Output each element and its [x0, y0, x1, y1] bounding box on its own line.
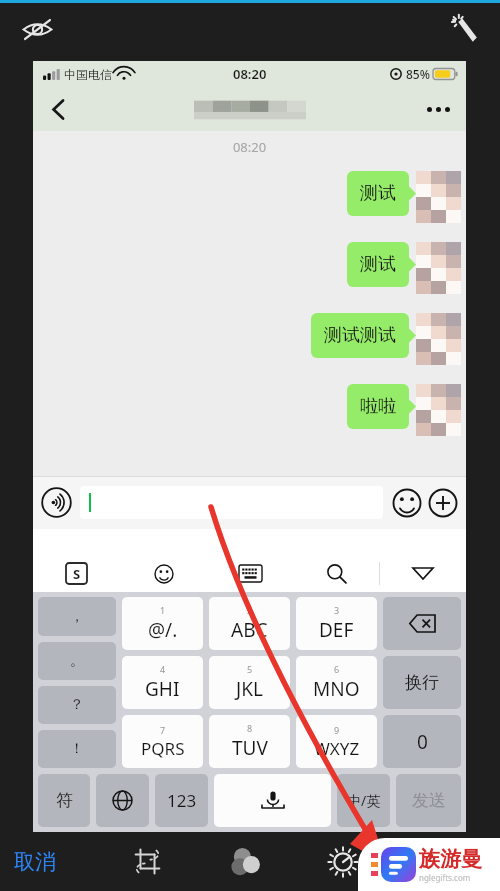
staticText: S — [73, 565, 81, 583]
button[interactable]: Emoji keyboard — [120, 555, 207, 592]
button[interactable]: 测试 — [347, 171, 409, 216]
staticText: 发送 — [412, 790, 446, 811]
staticText: 3 — [334, 604, 340, 616]
staticText: 取消 — [14, 849, 56, 875]
button[interactable]: Emoji — [392, 488, 422, 518]
button[interactable]: Magic enhance — [440, 6, 486, 52]
button[interactable]: 2 — [209, 597, 290, 650]
button[interactable] — [80, 486, 383, 519]
button[interactable]: 发送 — [396, 774, 461, 827]
staticText: 1 — [160, 604, 166, 616]
button[interactable]: ？ — [38, 686, 116, 724]
staticText: ， — [70, 608, 84, 626]
button[interactable]: 6 — [296, 656, 377, 709]
staticText: MNO — [313, 676, 360, 702]
button[interactable]: Search — [293, 555, 379, 592]
staticText: JKL — [236, 676, 263, 702]
staticText: 测试测试 — [324, 324, 396, 347]
button[interactable]: Crop and rotate — [98, 832, 196, 891]
staticText: @/. — [148, 617, 178, 643]
staticText: 换行 — [405, 672, 439, 693]
button[interactable]: Space or voice input — [214, 774, 331, 827]
button[interactable]: 7 — [122, 715, 203, 768]
button[interactable]: Hide keyboard — [380, 555, 466, 592]
button[interactable]: Adjust brightness — [294, 832, 392, 891]
staticText: 123 — [167, 789, 197, 812]
button[interactable]: 换行 — [383, 656, 461, 709]
staticText: 啦啦 — [360, 395, 396, 418]
button[interactable]: Add attachment — [428, 488, 458, 518]
button[interactable]: ！ — [38, 730, 116, 768]
staticText: 。 — [70, 652, 84, 670]
button[interactable]: 中/英 — [337, 774, 390, 827]
staticText: 中/英 — [347, 791, 381, 810]
staticText: WXYZ — [314, 737, 360, 760]
button[interactable]: ， — [38, 597, 116, 636]
button[interactable]: Input method settings — [33, 555, 120, 592]
staticText: GHI — [145, 676, 180, 702]
staticText: 2 — [247, 604, 253, 616]
button[interactable]: 啦啦 — [347, 384, 409, 429]
button[interactable]: Voice input — [41, 487, 72, 518]
button[interactable]: 8 — [209, 715, 290, 768]
button[interactable]: 9 — [296, 715, 377, 768]
staticText: ABC — [231, 617, 268, 643]
staticText: 符 — [56, 790, 73, 811]
staticText: 4 — [160, 663, 166, 675]
staticText: DEF — [319, 617, 354, 643]
staticText: 0 — [417, 729, 428, 755]
staticText: PQRS — [141, 737, 185, 760]
staticText: 测试 — [360, 182, 396, 205]
staticText: ！ — [70, 740, 84, 758]
button[interactable]: Back — [37, 88, 79, 130]
staticText: 08:20 — [33, 138, 466, 156]
button[interactable]: 123 — [155, 774, 208, 827]
staticText: 9 — [334, 724, 340, 736]
button[interactable]: 0 — [383, 715, 461, 768]
staticText: 08:20 — [233, 65, 267, 83]
button[interactable]: 测试测试 — [311, 313, 409, 358]
button[interactable]: Backspace — [383, 597, 461, 650]
button[interactable]: 测试 — [347, 242, 409, 287]
staticText: 5 — [247, 663, 253, 675]
button[interactable]: Switch language — [96, 774, 149, 827]
staticText: 7 — [160, 724, 166, 736]
staticText: 族游曼 — [419, 846, 482, 872]
button[interactable]: 1 — [122, 597, 203, 650]
staticText: 8 — [247, 722, 253, 734]
button[interactable]: 符 — [38, 774, 90, 827]
button[interactable]: 。 — [38, 642, 116, 680]
staticText: nglegifts.com — [419, 872, 471, 883]
button[interactable]: 4 — [122, 656, 203, 709]
staticText: 85% — [406, 66, 430, 82]
button[interactable]: Keyboard layout — [207, 555, 293, 592]
button[interactable]: 3 — [296, 597, 377, 650]
button[interactable]: Mosaic — [392, 832, 490, 891]
staticText: 6 — [334, 663, 340, 675]
staticText: 中国电信 — [64, 67, 112, 82]
button[interactable]: 取消 — [14, 832, 98, 891]
staticText: ？ — [70, 696, 84, 714]
button[interactable]: Hide preview — [14, 6, 60, 52]
button[interactable]: 5 — [209, 656, 290, 709]
staticText: 测试 — [360, 253, 396, 276]
button[interactable]: Filters — [196, 832, 294, 891]
staticText: TUV — [232, 735, 268, 761]
button[interactable]: More options — [418, 89, 458, 129]
